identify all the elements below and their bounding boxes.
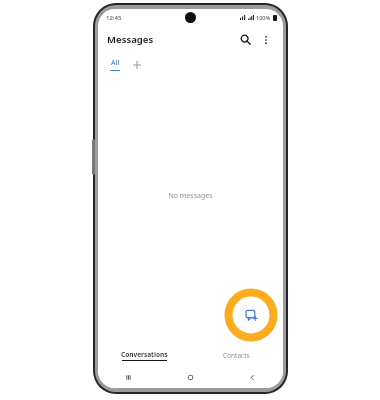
button[interactable]: Home (159, 367, 221, 388)
button[interactable]: More options (257, 31, 274, 48)
button[interactable]: Back (221, 367, 283, 388)
staticText: 100% (256, 14, 271, 21)
button[interactable]: Contacts (190, 344, 283, 367)
staticText: All (111, 58, 120, 68)
button[interactable]: New conversation (237, 301, 266, 330)
staticText: 12:45 (106, 14, 122, 22)
button[interactable]: Add (130, 58, 144, 72)
staticText: Messages (107, 33, 154, 46)
staticText: Contacts (223, 351, 250, 360)
button[interactable]: Recents (98, 367, 159, 388)
button[interactable]: Conversations (98, 344, 190, 367)
staticText: Conversations (121, 350, 168, 359)
button[interactable]: Search (237, 31, 254, 48)
staticText: No messages (168, 191, 213, 201)
button[interactable]: All (108, 58, 122, 71)
